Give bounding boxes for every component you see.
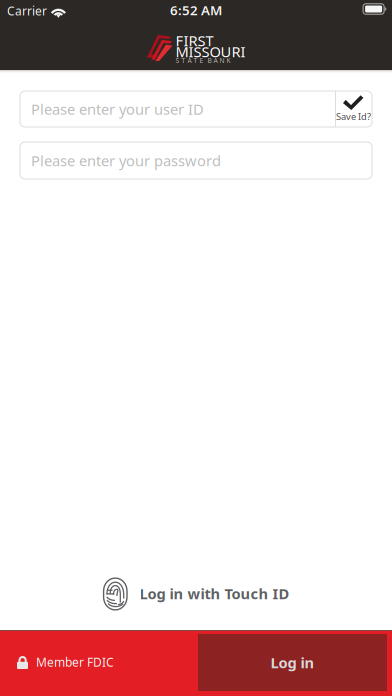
staticText: Member FDIC xyxy=(36,654,114,670)
staticText: Log in xyxy=(270,653,314,672)
button[interactable]: Save Id? xyxy=(335,91,372,127)
staticText: Please enter your password xyxy=(31,151,221,170)
button[interactable]: Log in with Touch ID xyxy=(0,574,392,614)
staticText: MISSOURI xyxy=(175,42,245,61)
staticText: Carrier xyxy=(7,3,47,19)
staticText: FIRST xyxy=(175,31,213,50)
staticText: Save Id? xyxy=(336,110,371,123)
staticText: Log in with Touch ID xyxy=(139,584,289,603)
staticText: 6:52 AM xyxy=(170,1,222,19)
staticText: S T A T E B A N K xyxy=(175,56,230,65)
staticText: Please enter your user ID xyxy=(31,99,204,119)
button[interactable]: Log in xyxy=(198,634,387,691)
